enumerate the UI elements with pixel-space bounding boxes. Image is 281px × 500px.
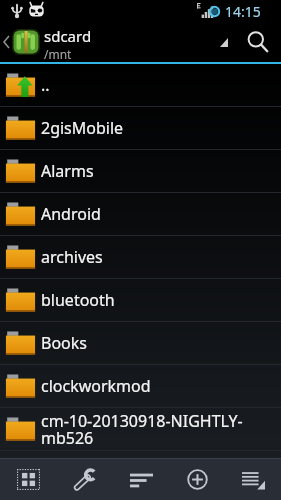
staticText: bluetooth (41, 289, 115, 311)
button[interactable]: cm-10-20130918-NIGHTLY-mb526 (0, 408, 281, 451)
staticText: archives (41, 246, 103, 268)
button[interactable]: sdcard (0, 22, 281, 62)
button[interactable]: Select items (0, 459, 57, 500)
staticText: Android (41, 203, 101, 225)
staticText: Books (41, 332, 87, 354)
button[interactable]: Books (0, 322, 281, 365)
staticText: Alarms (41, 160, 94, 182)
staticText: clockworkmod (41, 375, 151, 397)
button[interactable]: Sort (113, 459, 169, 500)
button[interactable]: 2gisMobile (0, 107, 281, 150)
button[interactable]: .. (0, 64, 281, 107)
button[interactable]: Alarms (0, 150, 281, 193)
button[interactable]: More options (211, 22, 237, 62)
button[interactable]: New (169, 459, 225, 500)
button[interactable]: clockworkmod (0, 365, 281, 408)
staticText: 14:15 (225, 2, 261, 21)
staticText: 2gisMobile (41, 117, 124, 139)
button[interactable]: Android (0, 193, 281, 236)
button[interactable]: bluetooth (0, 279, 281, 322)
staticText: sdcard (44, 26, 92, 46)
button[interactable]: Search (239, 22, 277, 62)
button[interactable]: More (225, 459, 281, 500)
button[interactable]: archives (0, 236, 281, 279)
staticText: cm-10-20130918-NIGHTLY-mb526 (41, 410, 281, 449)
staticText: /mnt (44, 46, 72, 62)
button[interactable]: Tools (57, 459, 113, 500)
staticText: .. (41, 74, 50, 96)
